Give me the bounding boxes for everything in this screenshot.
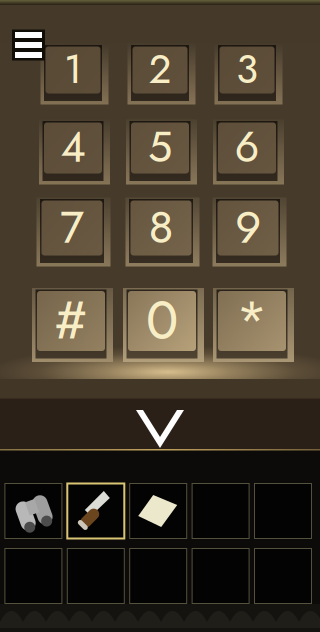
button[interactable]: Hide keypad xyxy=(136,410,184,448)
button[interactable]: 7 xyxy=(34,192,109,265)
staticText: # xyxy=(54,281,87,359)
button[interactable]: Empty slot xyxy=(130,548,187,603)
button[interactable]: 2 xyxy=(125,38,194,103)
button[interactable]: Knife xyxy=(67,483,124,538)
button[interactable]: Empty slot xyxy=(192,483,249,538)
staticText: 8 xyxy=(148,194,173,260)
button[interactable]: * xyxy=(211,283,293,361)
button[interactable]: Binoculars xyxy=(5,483,62,538)
staticText: 6 xyxy=(234,116,259,178)
button[interactable]: 1 xyxy=(38,38,107,103)
button[interactable]: 9 xyxy=(210,192,285,265)
staticText: 0 xyxy=(146,281,178,359)
staticText: * xyxy=(236,281,268,359)
button[interactable]: 4 xyxy=(37,114,109,183)
staticText: 4 xyxy=(60,116,85,178)
staticText: 1 xyxy=(64,40,82,98)
button[interactable]: Empty slot xyxy=(254,548,311,603)
button[interactable]: Empty slot xyxy=(192,548,249,603)
button[interactable]: 6 xyxy=(211,114,283,183)
button[interactable]: Empty slot xyxy=(254,483,311,538)
button[interactable]: 5 xyxy=(124,114,196,183)
staticText: 5 xyxy=(148,116,172,178)
button[interactable]: # xyxy=(30,283,112,361)
staticText: 7 xyxy=(60,194,84,260)
staticText: 3 xyxy=(236,40,258,98)
button[interactable]: Note xyxy=(130,483,187,538)
button[interactable]: Menu xyxy=(12,29,45,60)
button[interactable]: 8 xyxy=(123,192,198,265)
button[interactable]: Empty slot xyxy=(5,548,62,603)
staticText: 2 xyxy=(148,40,171,98)
button[interactable]: 3 xyxy=(212,38,281,103)
staticText: 9 xyxy=(235,194,261,260)
button[interactable]: Empty slot xyxy=(67,548,124,603)
button[interactable]: 0 xyxy=(121,283,203,361)
